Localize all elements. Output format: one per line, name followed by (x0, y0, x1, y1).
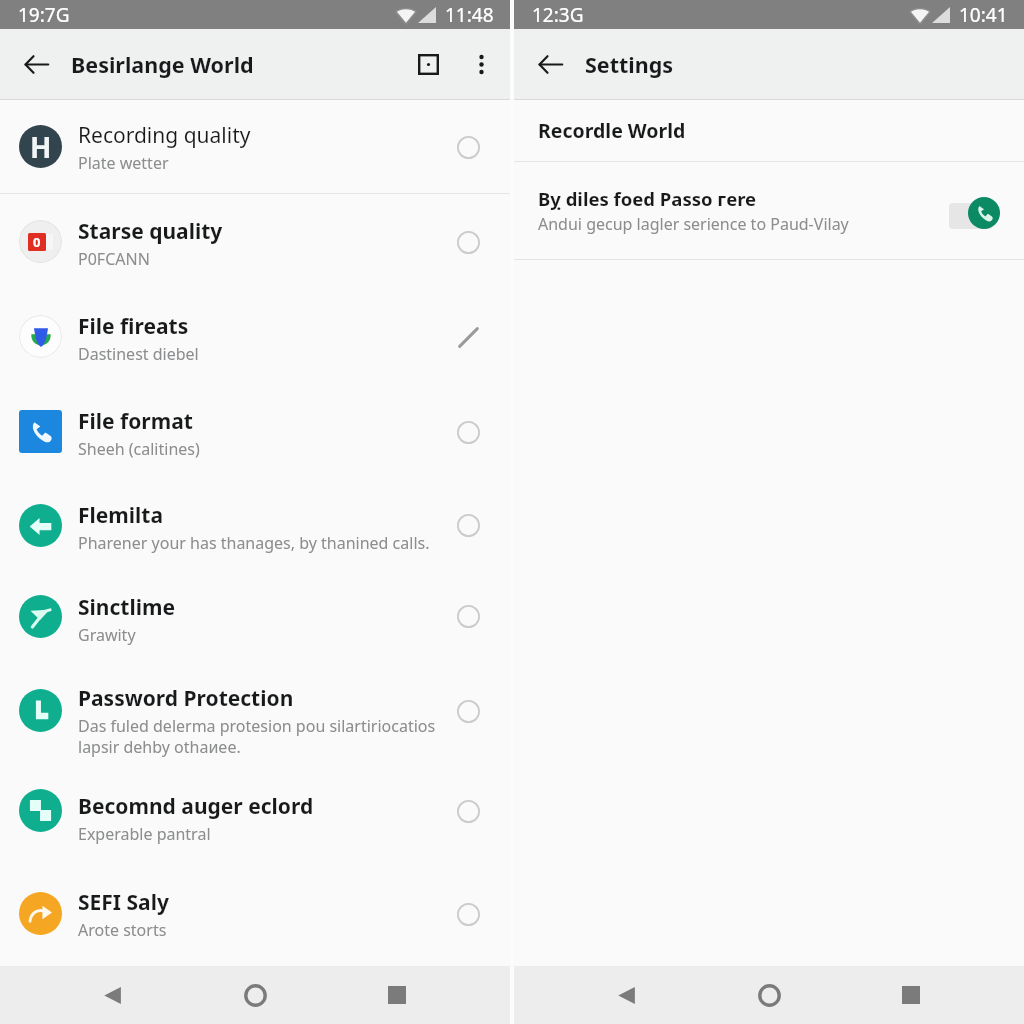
staticText: P0FCAΝN (78, 248, 150, 270)
staticText: Recording quality (78, 121, 251, 150)
staticText: Recordle World (538, 117, 686, 144)
button[interactable]: Navigate up (532, 46, 568, 82)
button[interactable]: More options (463, 46, 499, 82)
staticText: Bỵ diles foed Passo гere (538, 186, 757, 211)
staticText: Besirlange World (71, 50, 254, 79)
staticText: Starse quality (78, 217, 223, 246)
staticText: 12:3G (532, 2, 584, 28)
staticText: Sinctlime (78, 593, 175, 622)
staticText: Arote storts (78, 919, 167, 941)
button[interactable]: Flemilta (0, 479, 510, 571)
button[interactable]: Bỵ diles foed Passo гere (514, 162, 1024, 259)
button[interactable]: Becomnd auger eclord (0, 760, 510, 861)
button[interactable]: Home (745, 971, 793, 1019)
staticText: 11:48 (445, 2, 494, 28)
staticText: Grawity (78, 624, 136, 646)
button[interactable]: Password Protection (0, 661, 510, 760)
button[interactable]: Toggle call (938, 191, 1004, 231)
button[interactable]: Navigate up (18, 46, 54, 82)
button[interactable]: SEFI Saly (0, 861, 510, 966)
staticText: Sheeh (calitines) (78, 438, 200, 460)
staticText: Dastinest diebel (78, 343, 199, 365)
button[interactable]: File fireats (0, 289, 510, 384)
button[interactable]: Recent apps (887, 971, 935, 1019)
staticText: Flemilta (78, 501, 164, 530)
staticText: File format (78, 407, 193, 436)
button[interactable]: Back (89, 971, 137, 1019)
button[interactable]: Cast screen (410, 46, 446, 82)
staticText: H (30, 128, 52, 166)
button[interactable]: File format (0, 384, 510, 479)
staticText: 19:7G (18, 2, 70, 28)
staticText: 0 (33, 233, 41, 251)
staticText: Experable pantral (78, 823, 211, 845)
staticText: Password Protection (78, 684, 294, 713)
button[interactable]: 0 (0, 194, 510, 289)
button[interactable]: H (0, 100, 510, 193)
staticText: 10:41 (959, 2, 1008, 28)
staticText: Plate wetter (78, 152, 169, 174)
staticText: Das fuled delerma protesion pou silartir… (78, 715, 441, 758)
button[interactable]: Back (603, 971, 651, 1019)
button[interactable]: Home (231, 971, 279, 1019)
button[interactable]: Sinctlime (0, 571, 510, 661)
staticText: SEFI Saly (78, 888, 169, 917)
staticText: Pharener your has thanages, by thanined … (78, 532, 430, 554)
staticText: Andui gecup lagler serience to Paud-Vila… (538, 213, 849, 235)
button[interactable]: Recent apps (373, 971, 421, 1019)
staticText: Settings (585, 50, 674, 79)
staticText: File fireats (78, 312, 189, 341)
staticText: Becomnd auger eclord (78, 792, 314, 821)
